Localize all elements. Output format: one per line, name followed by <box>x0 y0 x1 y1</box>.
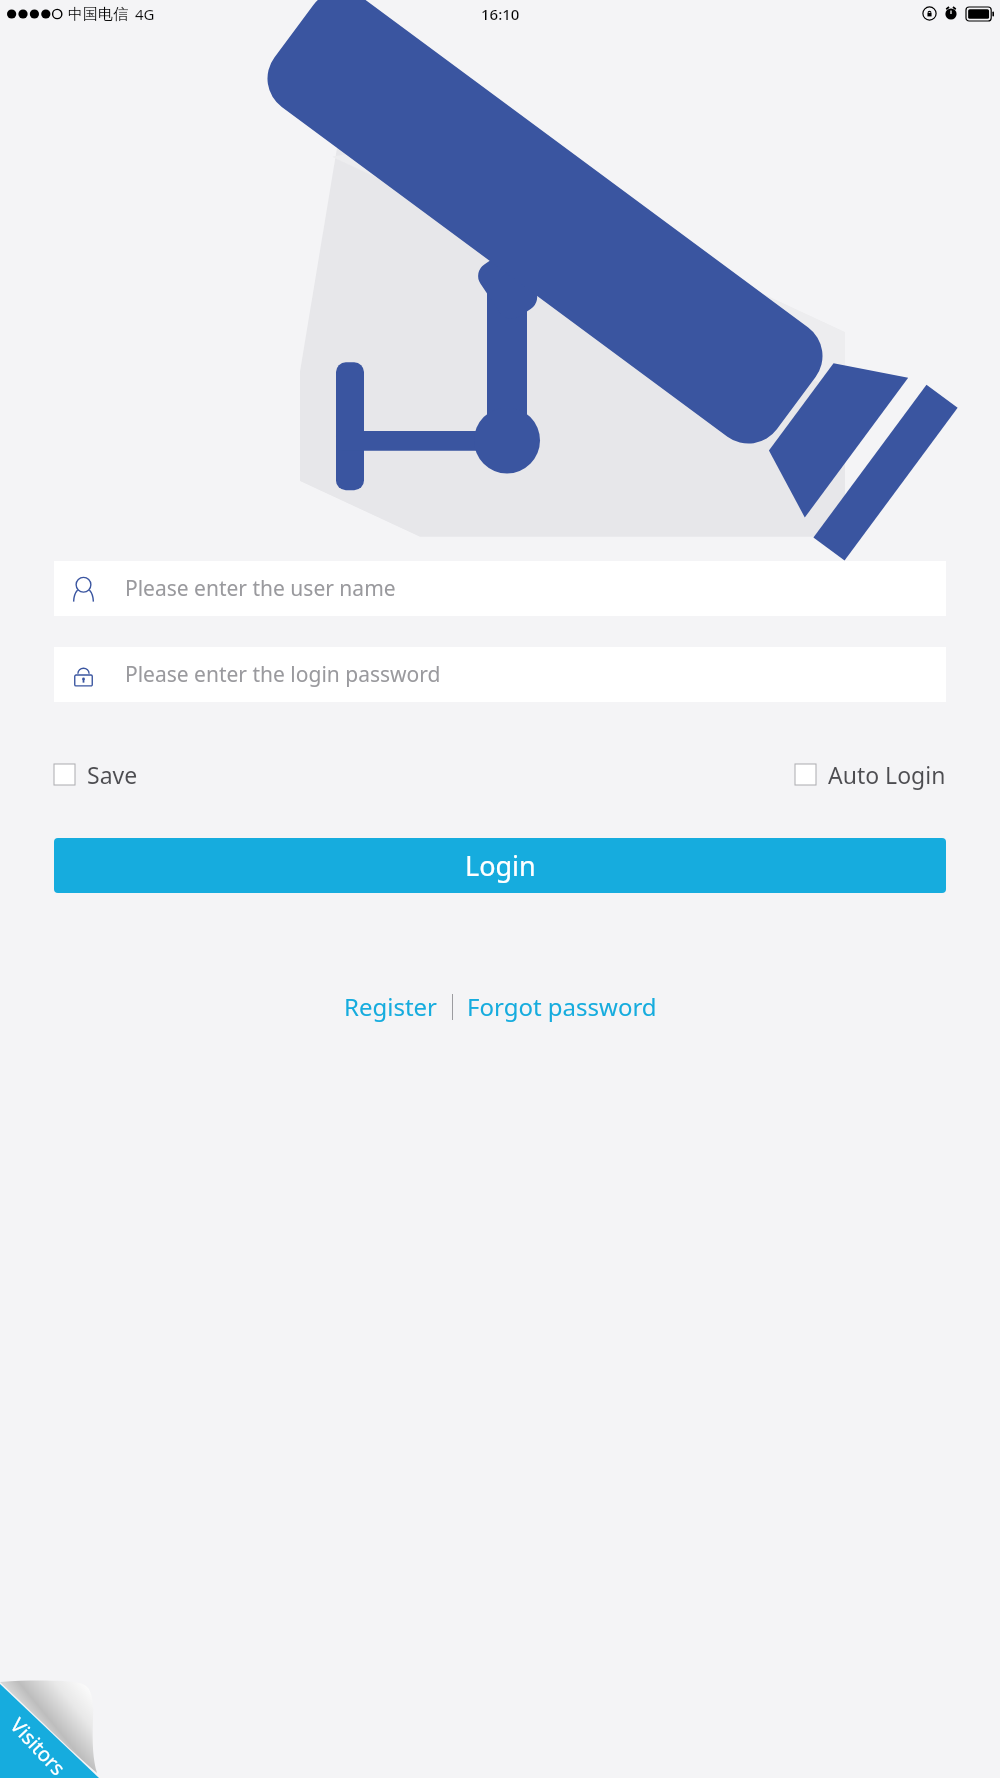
staticText: Please enter the login password <box>125 660 441 689</box>
button[interactable]: Forgot password <box>461 986 663 1027</box>
button[interactable]: User name <box>54 561 946 616</box>
other: Alarm <box>944 7 958 21</box>
staticText: Forgot password <box>467 990 657 1023</box>
staticText: 16:10 <box>481 4 520 24</box>
button[interactable]: Save <box>54 755 138 794</box>
staticText: 4G <box>135 4 155 24</box>
button[interactable]: Password <box>54 647 946 702</box>
button[interactable]: Login <box>54 838 946 893</box>
staticText: Please enter the user name <box>125 574 396 603</box>
button[interactable]: Visitors <box>0 1678 100 1778</box>
other: User name <box>71 576 96 602</box>
staticText: Visitors <box>4 1712 72 1778</box>
staticText: Register <box>344 990 438 1023</box>
other: Password <box>71 662 96 688</box>
staticText: Login <box>465 847 536 884</box>
other: Rotation lock <box>922 6 937 21</box>
other: Battery <box>966 7 994 21</box>
staticText: 中国电信 <box>68 5 128 24</box>
staticText: Auto Login <box>828 759 946 790</box>
button[interactable]: Auto Login <box>795 755 946 794</box>
button[interactable]: Register <box>338 986 444 1027</box>
staticText: Save <box>87 759 138 790</box>
